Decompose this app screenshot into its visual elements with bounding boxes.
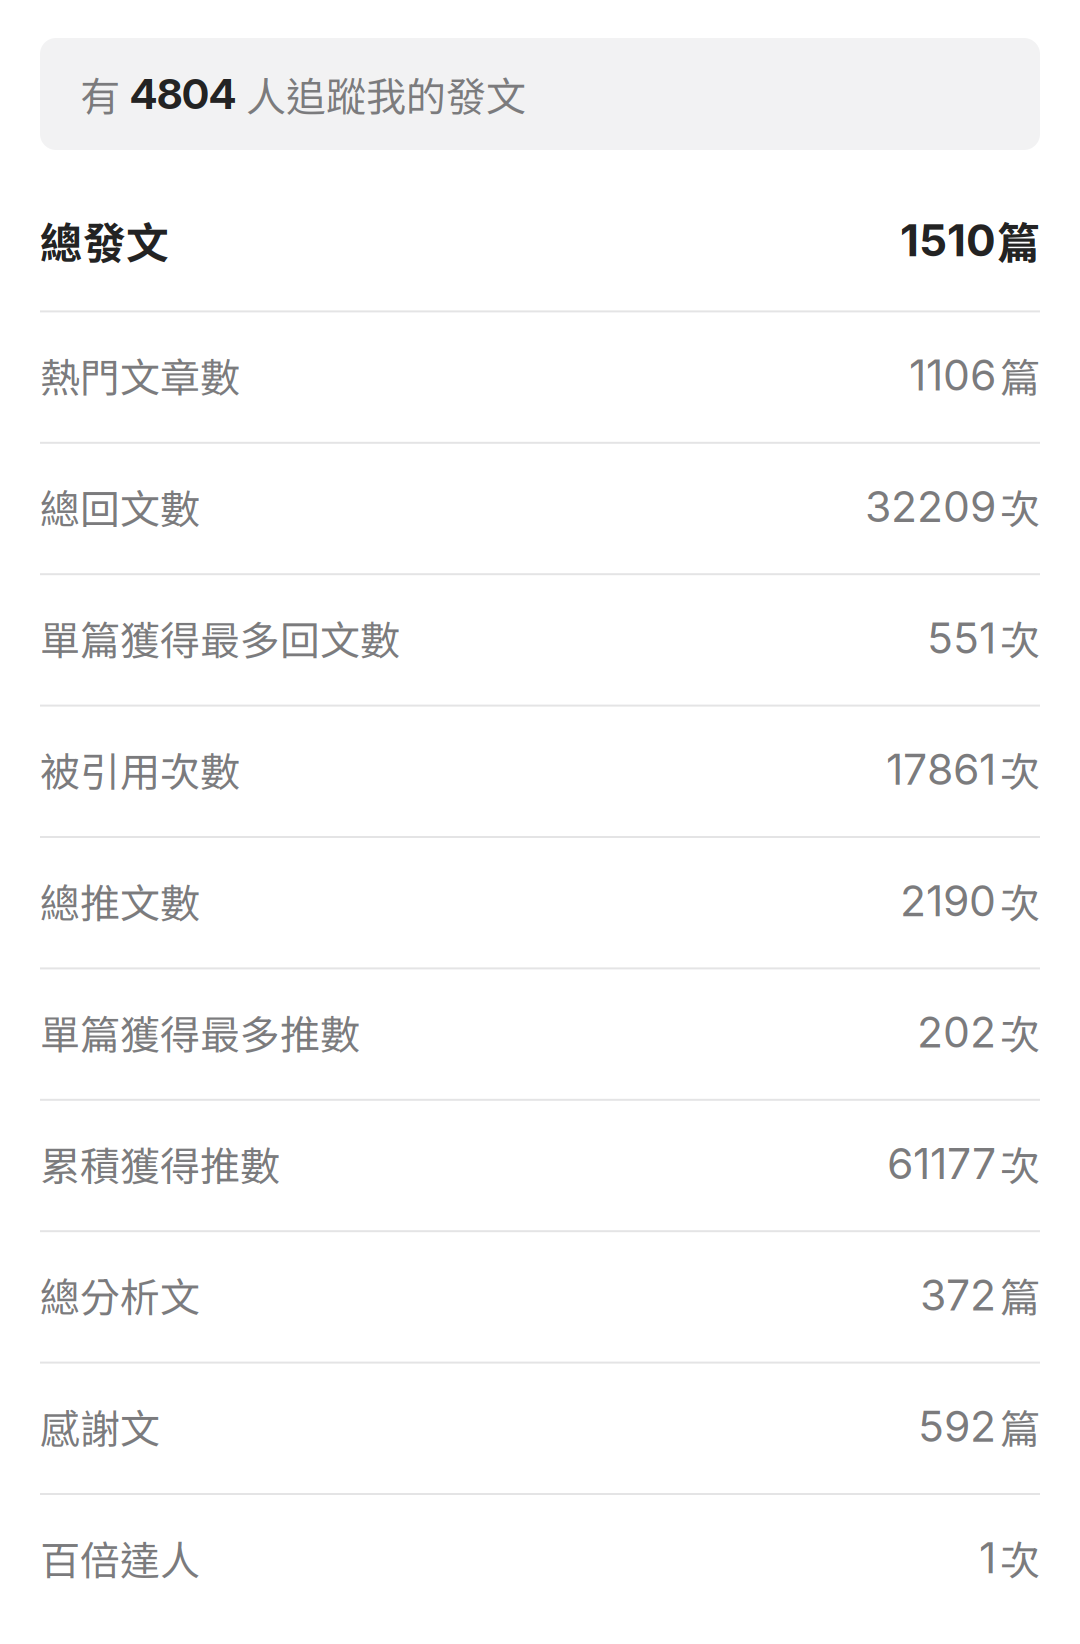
button[interactable]: 單篇獲得最多推數 [0,969,1080,1101]
button[interactable]: 總分析文 [0,1232,1080,1364]
staticText: 1106 [909,349,996,401]
button[interactable]: 熱門文章數 [0,312,1080,444]
staticText: 總回文數 [40,477,200,535]
button[interactable]: 百倍達人 [0,1495,1080,1624]
staticText: 感謝文 [40,1397,160,1455]
staticText: 百倍達人 [40,1529,200,1587]
staticText: 總分析文 [40,1266,200,1324]
button[interactable]: 總推文數 [0,838,1080,969]
staticText: 2190 [900,875,996,926]
staticText: 篇 [1000,1266,1040,1324]
staticText: 202 [917,1006,996,1058]
staticText: 1 [979,1532,996,1583]
button[interactable]: 總發文 [0,181,1080,312]
staticText: 總推文數 [40,872,200,930]
staticText: 次 [1000,609,1040,667]
staticText: 總發文 [40,209,169,271]
staticText: 單篇獲得最多回文數 [40,609,400,667]
staticText: 篇 [1000,1397,1040,1455]
staticText: 592 [918,1400,996,1452]
staticText: 被引用次數 [40,740,240,798]
button[interactable]: 感謝文 [0,1364,1080,1495]
button[interactable]: 累積獲得推數 [0,1101,1080,1232]
staticText: 32209 [865,481,996,532]
staticText: 4804 [130,69,236,119]
staticText: 次 [1000,1003,1040,1061]
staticText: 61177 [887,1138,996,1189]
staticText: 551 [927,612,996,664]
staticText: 人追蹤我的發文 [246,65,526,123]
staticText: 累積獲得推數 [40,1134,280,1192]
button[interactable]: 總回文數 [0,444,1080,575]
staticText: 次 [1000,477,1040,535]
staticText: 次 [1000,1134,1040,1192]
staticText: 次 [1000,740,1040,798]
button[interactable]: 單篇獲得最多回文數 [0,575,1080,707]
staticText: 篇 [1000,346,1040,404]
staticText: 單篇獲得最多推數 [40,1003,360,1061]
staticText: 372 [920,1269,996,1321]
staticText: 17861 [886,743,996,795]
staticText: 熱門文章數 [40,346,240,404]
staticText: 篇 [997,209,1040,271]
staticText: 次 [1000,1529,1040,1587]
staticText: 次 [1000,872,1040,930]
button[interactable]: 被引用次數 [0,707,1080,838]
staticText: 有 [80,65,120,123]
staticText: 1510 [900,214,996,267]
